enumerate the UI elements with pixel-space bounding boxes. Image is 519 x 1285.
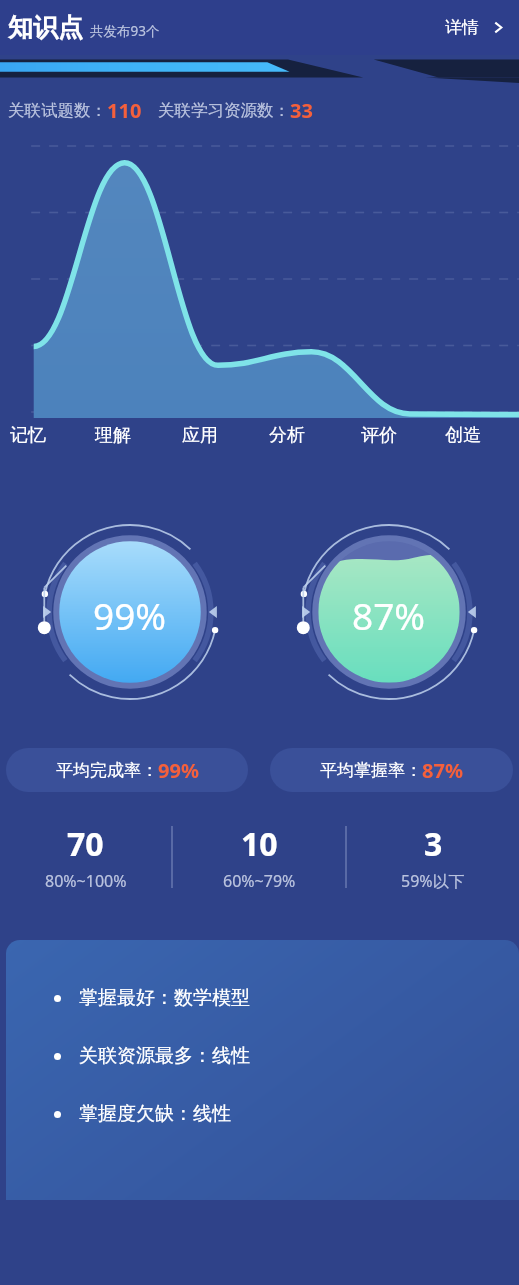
staticText: 关联学习资源数： <box>158 100 290 121</box>
staticText: 掌握最好：数学模型 <box>79 986 250 1010</box>
staticText: 59%以下 <box>401 870 465 892</box>
staticText: 记忆 <box>10 424 46 447</box>
button[interactable]: 70 <box>0 822 171 892</box>
staticText: 33 <box>290 97 313 124</box>
button[interactable]: 87% <box>273 502 505 734</box>
staticText: 关联资源最多：线性 <box>79 1044 250 1068</box>
button[interactable]: 掌握最好：数学模型 <box>6 940 519 1200</box>
button[interactable]: 3 <box>347 822 519 892</box>
staticText: 87% <box>352 590 426 640</box>
button[interactable]: 平均完成率： <box>6 748 248 792</box>
staticText: 创造 <box>445 424 481 447</box>
button[interactable]: 10 <box>173 822 345 892</box>
staticText: 87% <box>422 757 463 784</box>
button[interactable]: 平均掌握率： <box>270 748 513 792</box>
staticText: 60%~79% <box>223 870 296 892</box>
button[interactable]: 99% <box>14 502 246 734</box>
staticText: 共发布93个 <box>90 22 160 40</box>
staticText: 10 <box>241 822 278 866</box>
staticText: 99% <box>158 757 199 784</box>
staticText: 分析 <box>269 424 305 447</box>
staticText: 平均掌握率： <box>320 760 422 781</box>
staticText: 80%~100% <box>45 870 127 892</box>
staticText: 70 <box>67 822 104 866</box>
staticText: 平均完成率： <box>56 760 158 781</box>
staticText: 关联试题数： <box>8 100 107 121</box>
staticText: 110 <box>107 97 142 124</box>
button[interactable]: 详情 <box>429 11 519 44</box>
staticText: 99% <box>93 590 167 640</box>
staticText: 应用 <box>182 424 218 447</box>
staticText: 掌握度欠缺：线性 <box>79 1102 231 1126</box>
staticText: 详情 <box>445 17 479 38</box>
staticText: 理解 <box>95 424 131 447</box>
staticText: 评价 <box>361 424 397 447</box>
staticText: 知识点 <box>8 12 83 43</box>
staticText: 3 <box>424 822 443 866</box>
